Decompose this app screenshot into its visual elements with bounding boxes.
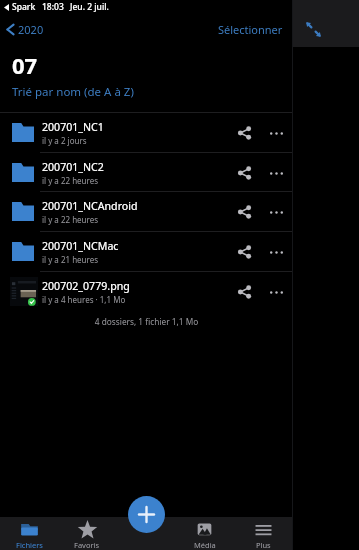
staticText: 200701_NC2 <box>42 160 104 174</box>
staticText: Jeu. 2 juil. <box>70 1 109 13</box>
button[interactable]: Add <box>128 496 165 533</box>
button[interactable]: More options <box>264 200 288 224</box>
staticText: 200702_0779.png <box>42 279 130 293</box>
staticText: 18:03 <box>42 1 64 13</box>
staticText: 07 <box>12 50 38 80</box>
button[interactable]: 200701_NCMac <box>0 231 293 271</box>
button[interactable]: 200701_NC2 <box>0 152 293 192</box>
staticText: il y a 22 heures <box>42 214 99 225</box>
button[interactable]: Share <box>232 280 256 304</box>
button[interactable]: 200701_NCAndroid <box>0 191 293 231</box>
button[interactable]: Favoris <box>58 517 116 550</box>
staticText: Sélectionner <box>218 22 283 37</box>
staticText: Média <box>194 540 216 550</box>
button[interactable]: Média <box>175 517 234 550</box>
button[interactable]: Share <box>232 200 256 224</box>
staticText: Favoris <box>74 540 100 550</box>
staticText: Trié par nom (de A à Z) <box>12 84 134 100</box>
staticText: Fichiers <box>16 540 43 550</box>
button[interactable]: Trié par nom (de A à Z) <box>12 84 134 100</box>
button[interactable]: 200701_NC1 <box>0 112 293 152</box>
button[interactable]: More options <box>264 240 288 264</box>
button[interactable]: More options <box>264 280 288 304</box>
button[interactable]: 200702_0779.png <box>0 271 293 311</box>
staticText: 2020 <box>18 22 44 37</box>
button[interactable]: More options <box>264 161 288 185</box>
staticText: Spark <box>12 1 36 13</box>
button[interactable]: Expand <box>306 22 321 37</box>
button[interactable]: Plus <box>234 517 293 550</box>
staticText: 4 dossiers, 1 fichier 1,1 Mo <box>0 316 293 327</box>
button[interactable]: Share <box>232 240 256 264</box>
button[interactable]: Share <box>232 121 256 145</box>
staticText: il y a 2 jours <box>42 135 87 146</box>
button[interactable]: 2020 <box>5 22 44 37</box>
staticText: 200701_NCAndroid <box>42 199 138 213</box>
staticText: il y a 22 heures <box>42 175 99 186</box>
staticText: 200701_NC1 <box>42 120 104 134</box>
button[interactable]: Sélectionner <box>218 22 283 37</box>
staticText: Plus <box>256 540 271 550</box>
button[interactable]: Share <box>232 161 256 185</box>
staticText: il y a 4 heures · 1,1 Mo <box>42 294 126 305</box>
staticText: 200701_NCMac <box>42 239 119 253</box>
button[interactable]: Fichiers <box>0 517 58 550</box>
button[interactable]: More options <box>264 121 288 145</box>
staticText: il y a 21 heures <box>42 254 99 265</box>
